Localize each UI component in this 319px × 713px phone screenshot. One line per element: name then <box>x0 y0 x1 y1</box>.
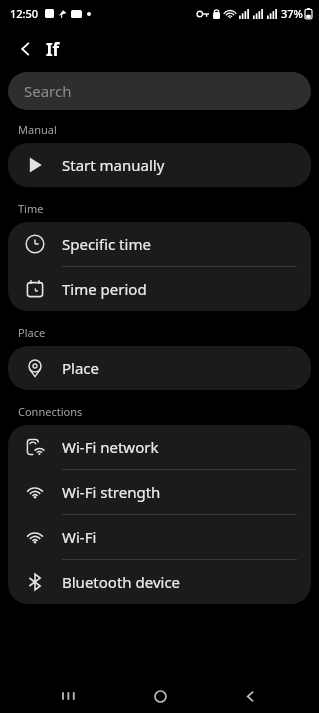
button[interactable]: Search <box>8 72 311 110</box>
button[interactable]: Specific time <box>8 222 311 266</box>
button[interactable]: Back <box>228 679 272 713</box>
button[interactable]: Back <box>8 31 44 67</box>
button[interactable]: Time period <box>8 267 311 311</box>
staticText: Manual <box>18 122 57 137</box>
button[interactable]: Start manually <box>8 143 311 187</box>
staticText: Bluetooth device <box>62 572 181 592</box>
button[interactable]: Home <box>138 679 182 713</box>
staticText: 12:50 <box>10 6 39 21</box>
button[interactable]: Bluetooth device <box>8 560 311 604</box>
staticText: 37% <box>281 6 303 21</box>
staticText: Specific time <box>62 234 151 254</box>
staticText: Wi-Fi strength <box>62 482 161 502</box>
button[interactable]: Place <box>8 346 311 390</box>
staticText: Start manually <box>62 155 165 175</box>
staticText: Time period <box>62 279 147 299</box>
staticText: Time <box>18 201 44 216</box>
staticText: Connections <box>18 404 83 419</box>
staticText: Place <box>18 325 46 340</box>
button[interactable]: Recent apps <box>47 679 91 713</box>
staticText: Wi-Fi network <box>62 437 159 457</box>
button[interactable]: Wi-Fi network <box>8 425 311 469</box>
staticText: If <box>46 38 60 61</box>
staticText: Place <box>62 358 100 378</box>
button[interactable]: Wi-Fi strength <box>8 470 311 514</box>
staticText: Search <box>24 81 72 101</box>
staticText: Wi-Fi <box>62 527 97 547</box>
button[interactable]: Wi-Fi <box>8 515 311 559</box>
